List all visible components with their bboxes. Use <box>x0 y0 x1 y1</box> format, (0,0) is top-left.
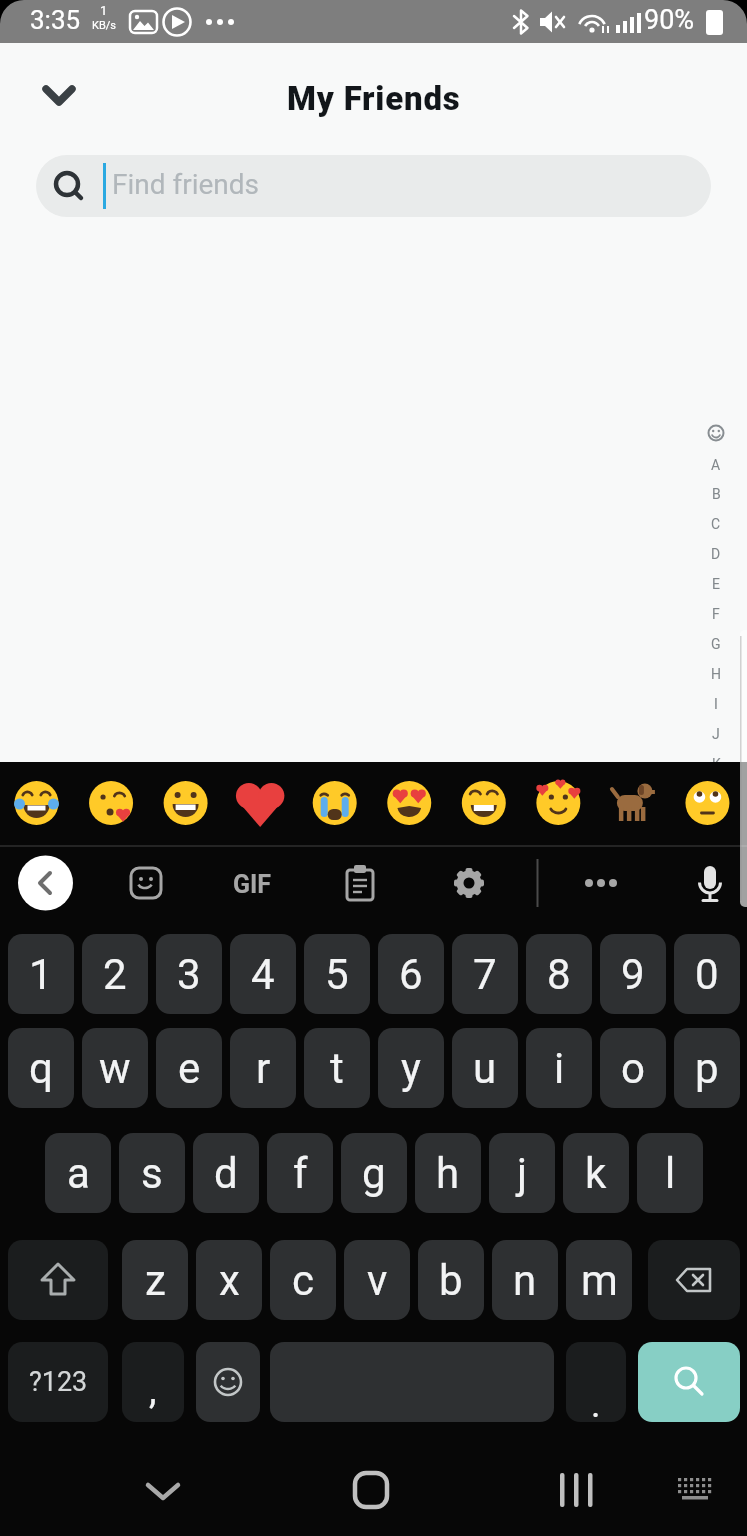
staticText: 8 <box>547 950 571 999</box>
button[interactable]: n <box>492 1240 558 1320</box>
button[interactable] <box>547 1458 607 1518</box>
button[interactable]: GIF <box>226 865 278 903</box>
button[interactable] <box>8 1240 108 1320</box>
staticText: m <box>581 1256 618 1305</box>
staticText: v <box>367 1256 388 1305</box>
staticText: 1 <box>100 3 108 18</box>
button[interactable]: o <box>600 1028 666 1108</box>
staticText: 3 <box>177 950 201 999</box>
button[interactable]: 8 <box>526 934 592 1014</box>
staticText: c <box>292 1256 314 1305</box>
button[interactable]: w <box>82 1028 148 1108</box>
button[interactable] <box>196 1342 260 1422</box>
staticText: , <box>149 1368 157 1413</box>
staticText: B <box>712 486 721 502</box>
button[interactable]: Find friends <box>36 155 711 217</box>
staticText: KB/s <box>92 19 116 32</box>
button[interactable] <box>663 1458 723 1518</box>
button[interactable]: 2 <box>82 934 148 1014</box>
staticText: J <box>712 726 720 742</box>
button[interactable] <box>18 855 74 911</box>
button[interactable] <box>648 1240 740 1320</box>
button[interactable]: x <box>196 1240 262 1320</box>
button[interactable]: a <box>45 1133 111 1213</box>
button[interactable]: y <box>378 1028 444 1108</box>
staticText: 9 <box>621 950 645 999</box>
button[interactable]: m <box>566 1240 632 1320</box>
button[interactable]: k <box>563 1133 629 1213</box>
button[interactable]: r <box>230 1028 296 1108</box>
staticText: u <box>473 1044 497 1093</box>
staticText: g <box>362 1149 386 1198</box>
button[interactable] <box>341 1458 401 1518</box>
staticText: x <box>219 1256 240 1305</box>
button[interactable]: d <box>193 1133 259 1213</box>
staticText: GIF <box>233 870 272 899</box>
staticText: F <box>712 606 720 622</box>
staticText: f <box>293 1149 308 1198</box>
button[interactable]: 4 <box>230 934 296 1014</box>
staticText: l <box>665 1149 676 1198</box>
button[interactable]: p <box>674 1028 740 1108</box>
staticText: n <box>513 1256 537 1305</box>
staticText: ?123 <box>29 1366 88 1398</box>
staticText: 6 <box>399 950 423 999</box>
button[interactable]: u <box>452 1028 518 1108</box>
staticText: 3:35 <box>30 5 81 35</box>
button[interactable]: ?123 <box>8 1342 108 1422</box>
button[interactable]: v <box>344 1240 410 1320</box>
button[interactable] <box>44 85 74 109</box>
button[interactable] <box>270 1342 554 1422</box>
button[interactable]: . <box>566 1342 626 1422</box>
button[interactable]: b <box>418 1240 484 1320</box>
button[interactable]: s <box>119 1133 185 1213</box>
staticText: q <box>29 1044 53 1093</box>
button[interactable]: l <box>637 1133 703 1213</box>
staticText: e <box>178 1044 201 1093</box>
button[interactable]: 3 <box>156 934 222 1014</box>
staticText: 5 <box>325 950 349 999</box>
staticText: K <box>712 756 721 762</box>
button[interactable]: 7 <box>452 934 518 1014</box>
button[interactable]: t <box>304 1028 370 1108</box>
button[interactable] <box>0 762 747 845</box>
staticText: D <box>711 546 721 562</box>
button[interactable]: e <box>156 1028 222 1108</box>
staticText: w <box>99 1044 131 1093</box>
button[interactable]: 0 <box>674 934 740 1014</box>
button[interactable]: j <box>489 1133 555 1213</box>
staticText: Find friends <box>112 168 260 201</box>
button[interactable]: 5 <box>304 934 370 1014</box>
button[interactable]: q <box>8 1028 74 1108</box>
button[interactable]: h <box>415 1133 481 1213</box>
button[interactable]: g <box>341 1133 407 1213</box>
staticText: d <box>214 1149 238 1198</box>
staticText: H <box>711 666 721 682</box>
staticText: p <box>695 1044 719 1093</box>
staticText: k <box>585 1149 607 1198</box>
button[interactable]: 6 <box>378 934 444 1014</box>
staticText: 2 <box>103 950 127 999</box>
staticText: E <box>712 576 720 592</box>
staticText: My Friends <box>287 79 461 118</box>
button[interactable]: z <box>122 1240 188 1320</box>
button[interactable]: , <box>122 1342 184 1422</box>
staticText: 0 <box>695 950 719 999</box>
staticText: j <box>517 1149 528 1198</box>
button[interactable]: c <box>270 1240 336 1320</box>
button[interactable]: f <box>267 1133 333 1213</box>
staticText: 7 <box>473 950 497 999</box>
button[interactable] <box>638 1342 740 1422</box>
button[interactable] <box>133 1458 193 1518</box>
staticText: o <box>621 1044 645 1093</box>
staticText: i <box>554 1044 565 1093</box>
button[interactable]: 1 <box>8 934 74 1014</box>
staticText: z <box>145 1256 166 1305</box>
staticText: a <box>67 1149 90 1198</box>
staticText: y <box>401 1044 421 1093</box>
staticText: 4 <box>251 950 275 999</box>
staticText: b <box>439 1256 463 1305</box>
button[interactable]: 9 <box>600 934 666 1014</box>
button[interactable]: i <box>526 1028 592 1108</box>
staticText: s <box>141 1149 163 1198</box>
